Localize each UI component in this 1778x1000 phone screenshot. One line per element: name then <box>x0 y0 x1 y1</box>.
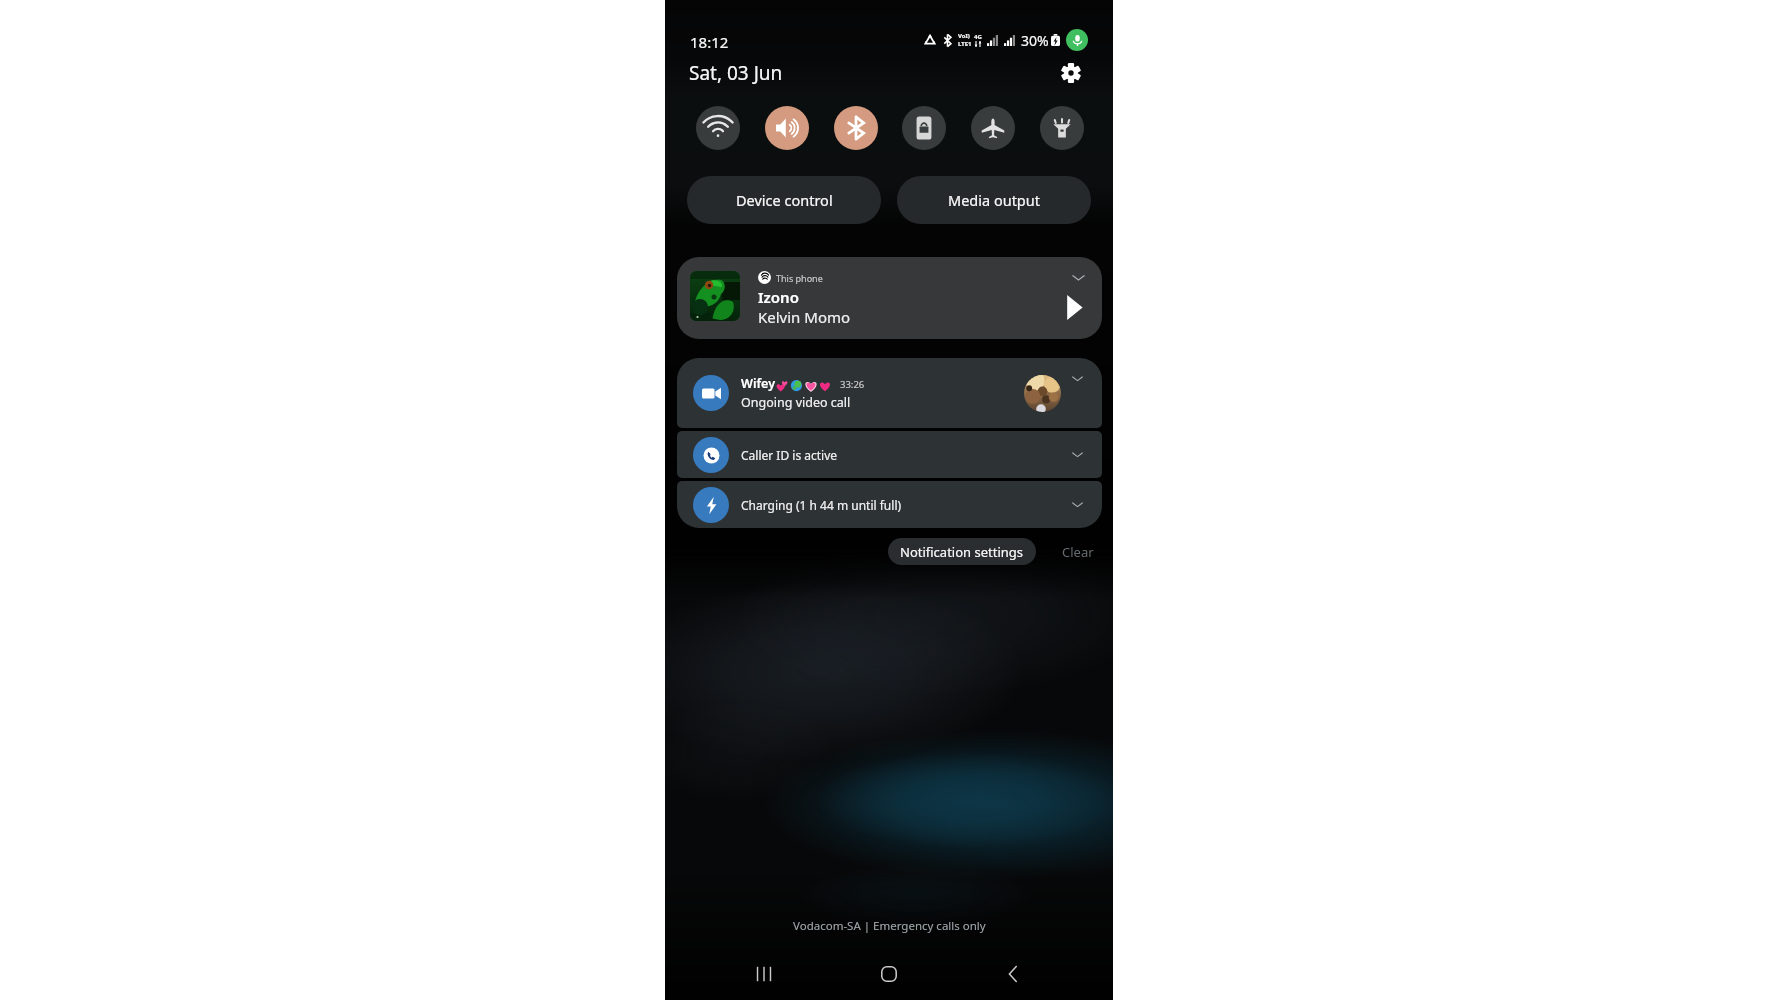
button[interactable]: Auto rotate <box>902 106 946 150</box>
staticText: Caller ID is active <box>741 447 838 463</box>
staticText: Kelvin Momo <box>758 307 851 327</box>
button[interactable]: Home <box>867 952 911 996</box>
button[interactable]: Flight mode <box>971 106 1015 150</box>
staticText: Clear <box>1062 543 1094 561</box>
button[interactable]: Sound <box>765 106 809 150</box>
button[interactable]: Expand <box>1071 270 1086 285</box>
staticText: Wifey <box>741 375 776 392</box>
button[interactable]: Device control <box>687 176 881 224</box>
staticText: Device control <box>736 190 833 210</box>
staticText: VoI) <box>958 32 970 40</box>
button[interactable]: Bluetooth <box>834 106 878 150</box>
button[interactable]: Charging (1 h 44 m until full) <box>677 481 1102 528</box>
button[interactable]: Recents <box>742 952 786 996</box>
button[interactable]: This phone <box>677 257 1102 339</box>
staticText: 30% <box>1021 31 1049 50</box>
staticText: 4G <box>974 33 982 41</box>
button[interactable]: Back <box>991 952 1035 996</box>
staticText: 18:12 <box>690 32 729 52</box>
button[interactable]: Caller ID is active <box>677 431 1102 478</box>
staticText: Izono <box>758 287 799 307</box>
button[interactable]: Wifey <box>677 358 1102 428</box>
button[interactable]: Clear <box>1036 538 1104 565</box>
button[interactable]: Media output <box>897 176 1091 224</box>
button[interactable]: Play <box>1060 293 1088 321</box>
staticText: Sat, 03 Jun <box>689 60 783 86</box>
staticText: This phone <box>776 272 823 284</box>
staticText: Media output <box>948 190 1040 210</box>
staticText: Ongoing video call <box>741 394 851 411</box>
button[interactable]: Settings <box>1057 59 1085 87</box>
staticText: Charging (1 h 44 m until full) <box>741 497 902 513</box>
staticText: Notification settings <box>900 543 1024 561</box>
button[interactable]: Notification settings <box>888 538 1036 565</box>
button[interactable]: Wi-Fi <box>696 106 740 150</box>
staticText: LTE1 <box>958 40 972 48</box>
button[interactable]: Flashlight <box>1040 106 1084 150</box>
button[interactable]: Expand <box>1071 372 1084 385</box>
staticText: 33:26 <box>840 378 865 391</box>
staticText: Vodacom-SA | Emergency calls only <box>793 918 986 934</box>
